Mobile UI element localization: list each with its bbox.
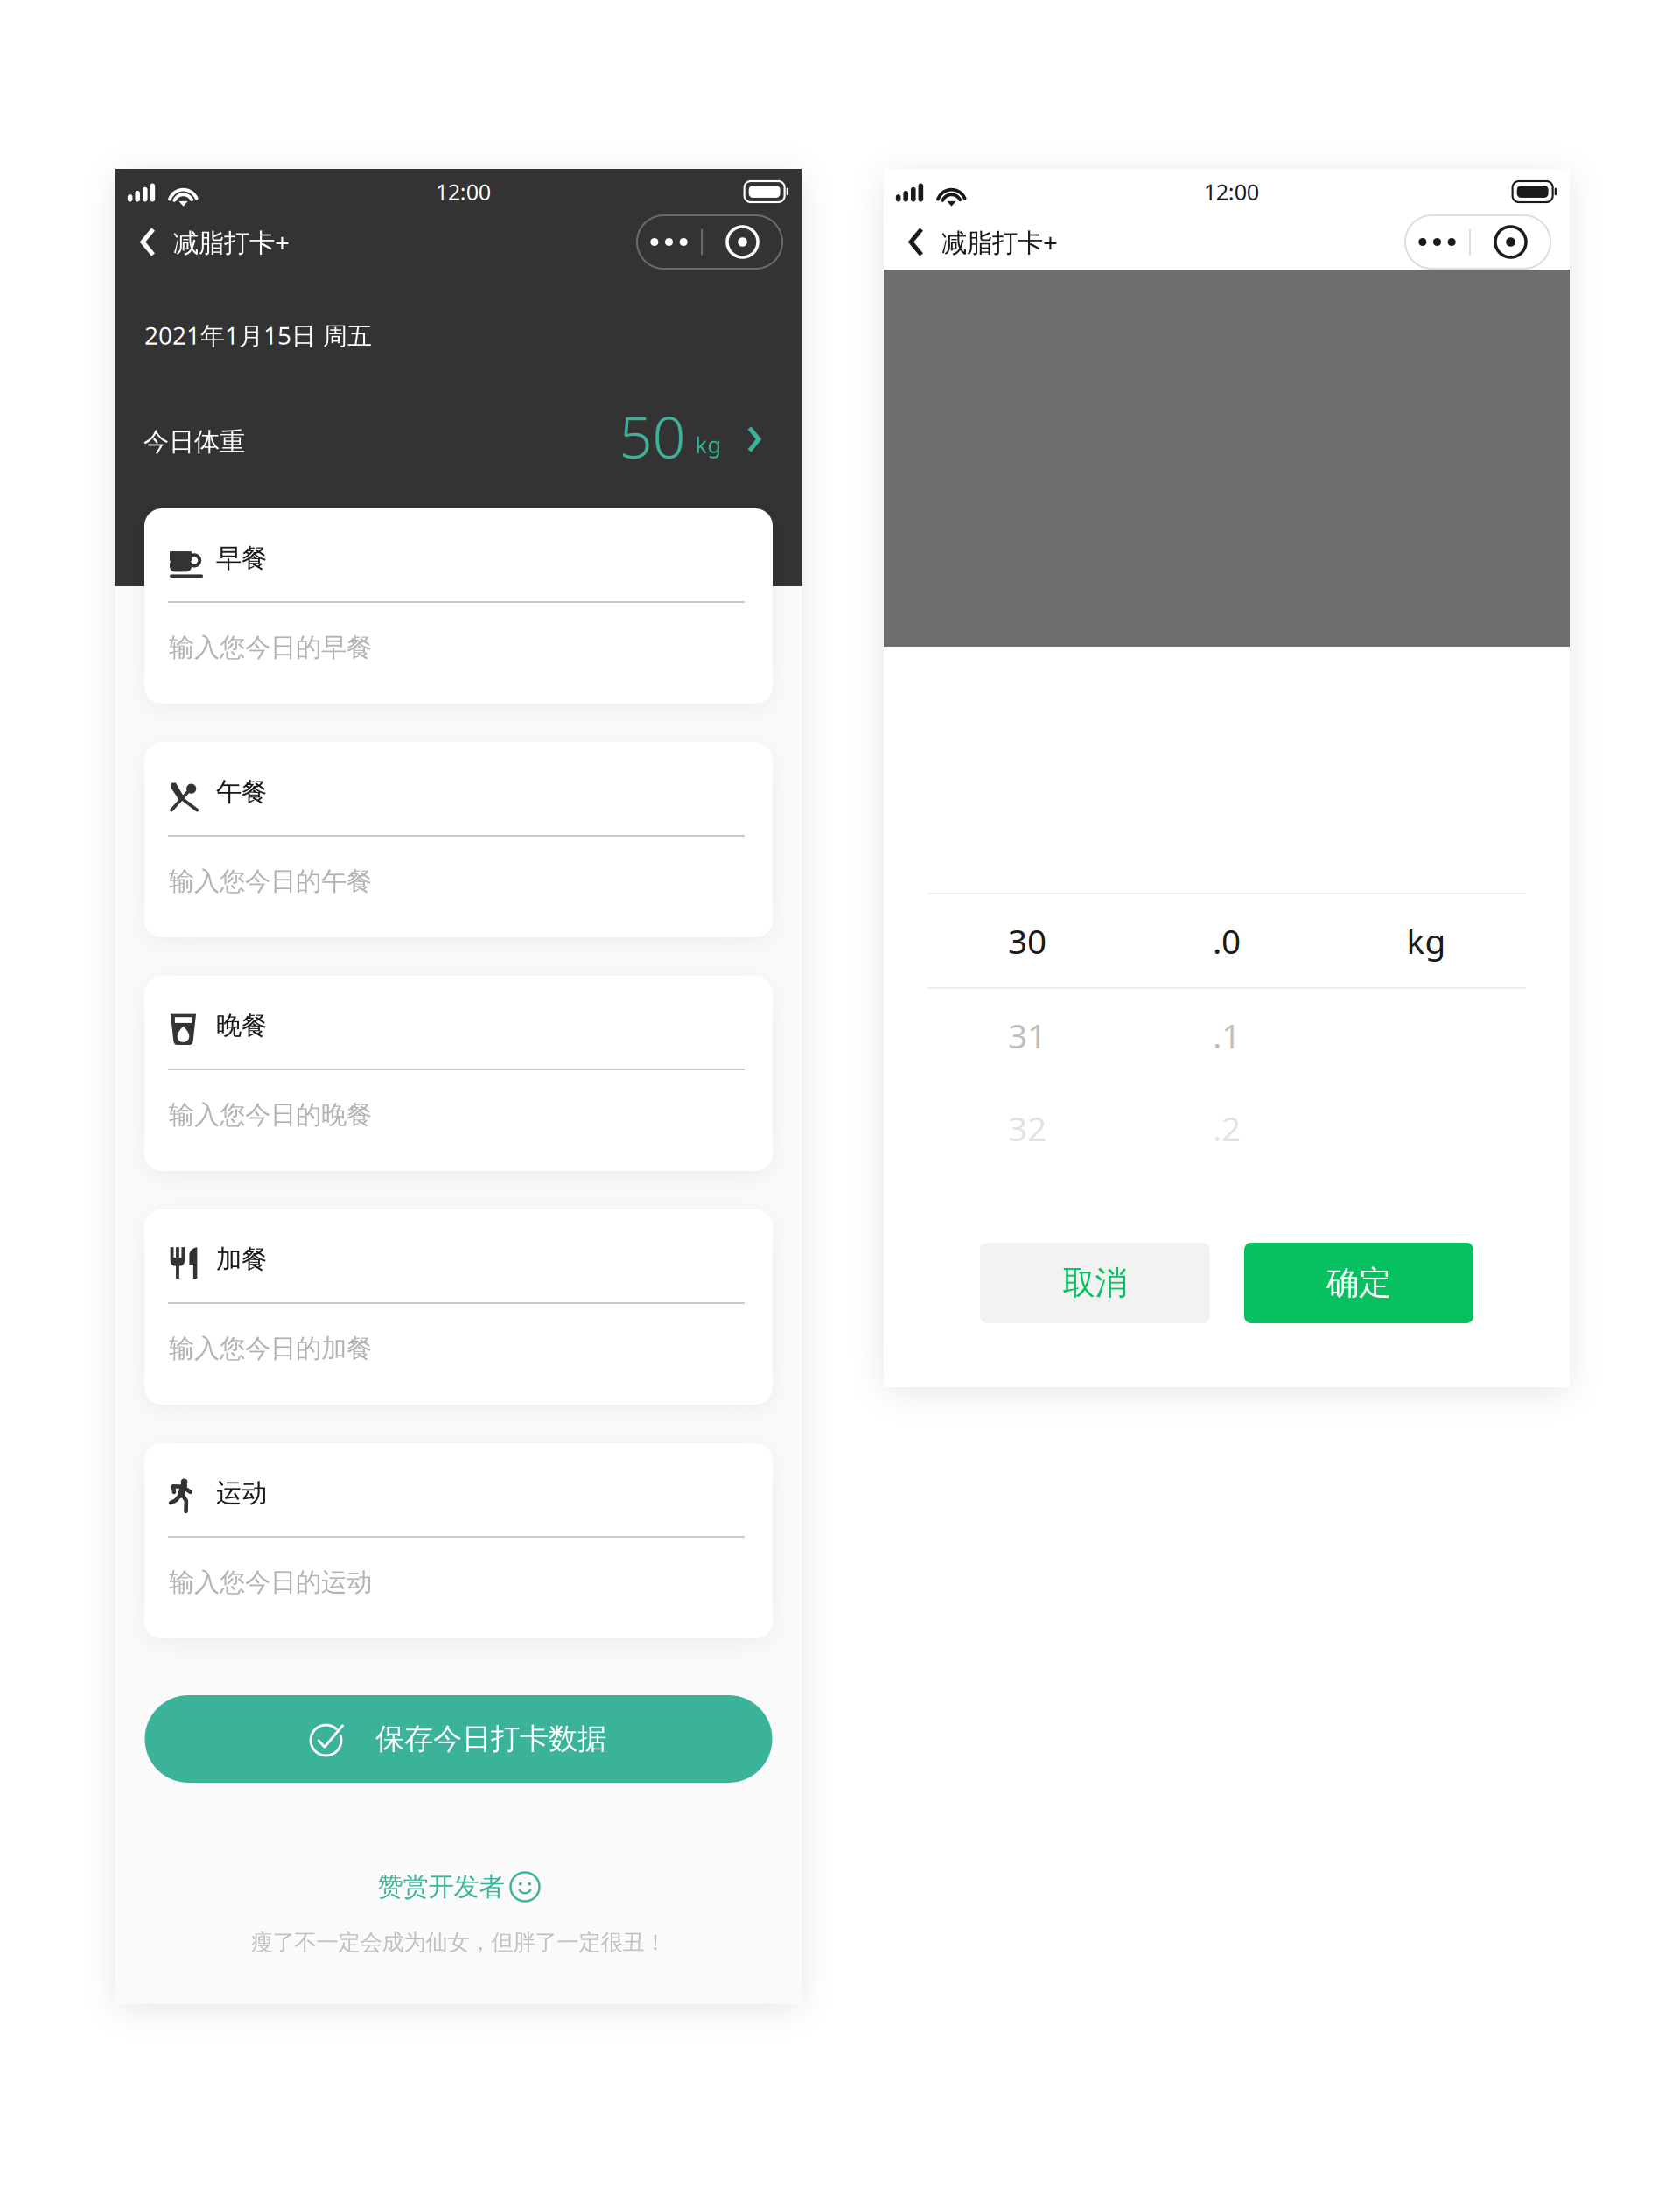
- staticText: 取消: [1063, 1263, 1127, 1303]
- staticText: 保存今日打卡数据: [375, 1721, 606, 1757]
- staticText: 输入您今日的运动: [169, 1567, 372, 1598]
- staticText: 今日体重: [143, 426, 245, 458]
- staticText: .2: [1213, 1106, 1241, 1150]
- button[interactable]: 减脂打卡+: [884, 214, 1077, 270]
- staticText: 减脂打卡+: [942, 225, 1058, 259]
- staticText: 确定: [1326, 1263, 1391, 1303]
- staticText: 晚餐: [216, 1010, 267, 1041]
- staticText: .0: [1213, 918, 1241, 963]
- staticText: 输入您今日的加餐: [169, 1333, 372, 1364]
- staticText: kg: [695, 430, 721, 459]
- staticText: 31: [1008, 1013, 1046, 1058]
- staticText: 早餐: [216, 543, 267, 574]
- staticText: 输入您今日的早餐: [169, 632, 372, 663]
- staticText: 12:00: [1204, 177, 1259, 206]
- staticText: 2021年1月15日 周五: [144, 319, 372, 351]
- staticText: 12:00: [436, 177, 491, 206]
- button[interactable]: 保存今日打卡数据: [145, 1695, 772, 1783]
- staticText: 减脂打卡+: [173, 225, 290, 259]
- staticText: 输入您今日的晚餐: [169, 1099, 372, 1131]
- button[interactable]: 午餐: [144, 742, 773, 937]
- staticText: kg: [1407, 918, 1446, 963]
- button[interactable]: 早餐: [144, 508, 773, 704]
- button[interactable]: More: [1405, 215, 1550, 269]
- button[interactable]: 减脂打卡+: [115, 214, 309, 270]
- staticText: 加餐: [216, 1244, 267, 1275]
- staticText: 50: [619, 397, 686, 475]
- staticText: 30: [1008, 918, 1046, 963]
- button[interactable]: 赞赏开发者: [378, 1867, 539, 1907]
- staticText: 瘦了不一定会成为仙女，但胖了一定很丑！: [251, 1929, 666, 1956]
- staticText: 输入您今日的午餐: [169, 866, 372, 897]
- button[interactable]: 运动: [144, 1443, 773, 1638]
- button[interactable]: 确定: [1244, 1243, 1473, 1323]
- staticText: 赞赏开发者: [378, 1871, 504, 1903]
- button[interactable]: 晚餐: [144, 976, 773, 1171]
- button[interactable]: 今日体重: [115, 417, 801, 466]
- button[interactable]: 取消: [980, 1243, 1210, 1323]
- staticText: 运动: [216, 1477, 267, 1509]
- staticText: 午餐: [216, 776, 267, 808]
- button[interactable]: 加餐: [144, 1209, 773, 1405]
- staticText: 32: [1008, 1106, 1046, 1150]
- button[interactable]: More: [637, 215, 782, 269]
- staticText: .1: [1213, 1013, 1241, 1058]
